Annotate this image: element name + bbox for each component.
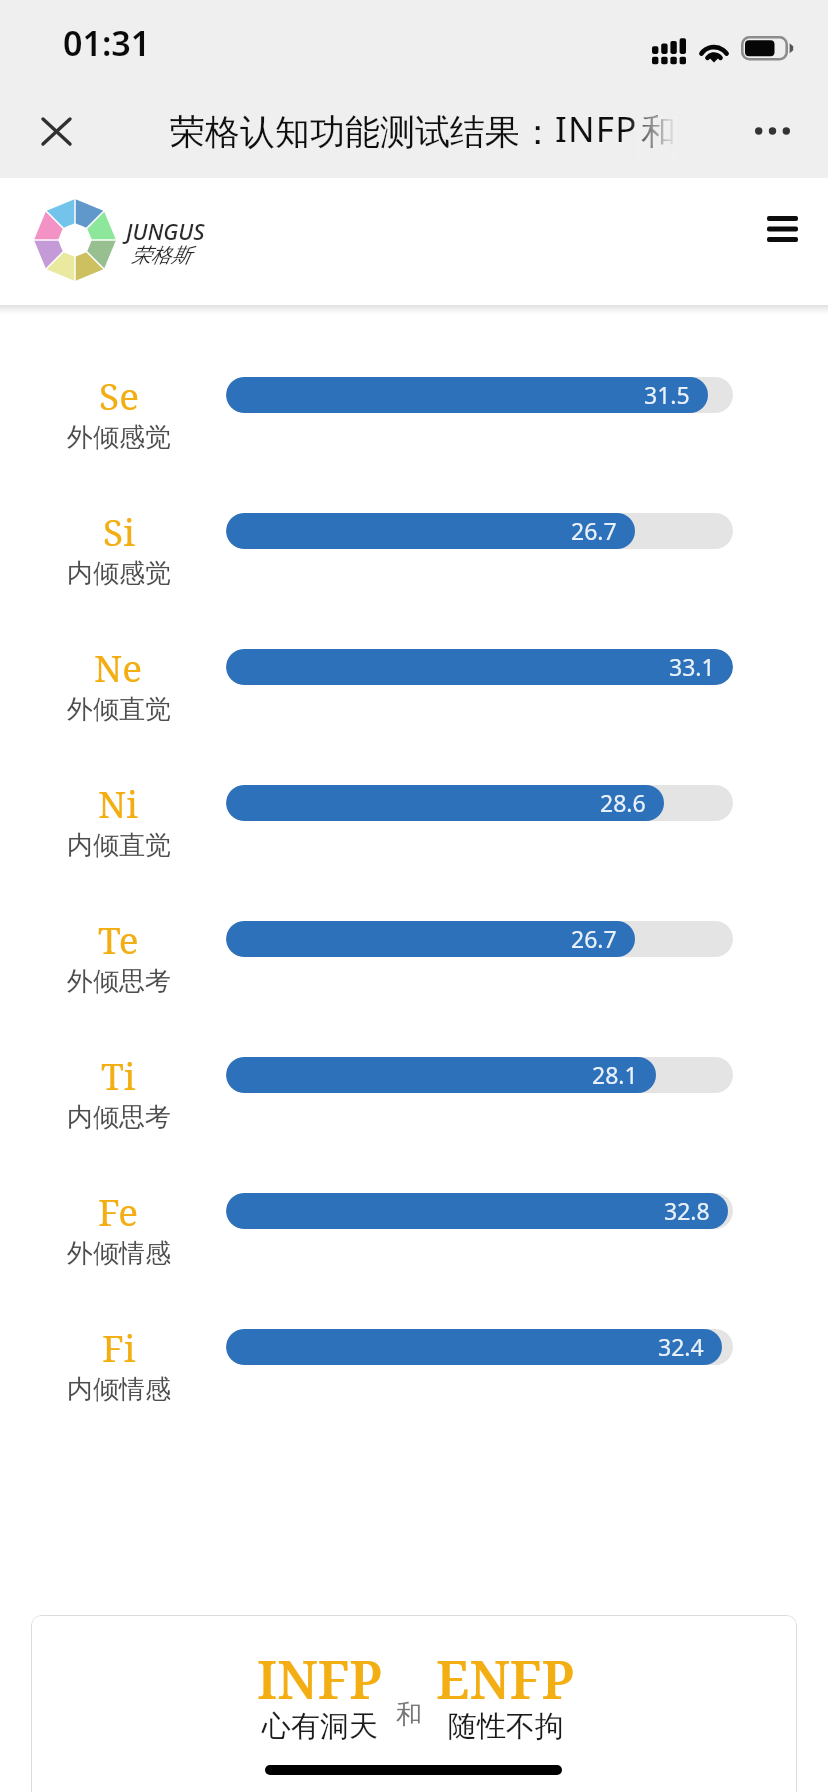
staticText: 荣格斯 [131,243,191,268]
staticText: 和 [641,110,676,154]
staticText: INFP [555,105,638,153]
staticText: 33.1 [669,651,715,682]
staticText: 01:31 [63,20,151,66]
staticText: 随性不拘 [448,1708,564,1745]
staticText: 内倾直觉 [67,829,171,862]
staticText: 26.7 [571,923,617,954]
staticText: 内倾情感 [67,1373,171,1406]
staticText: Te [98,914,139,964]
staticText: ENFP [436,1643,575,1714]
button[interactable]: Si [0,495,828,615]
staticText: Si [103,506,135,556]
button[interactable]: Ne [0,631,828,751]
button[interactable]: Close [24,99,88,163]
staticText: 外倾直觉 [67,693,171,726]
staticText: 心有洞天 [262,1708,378,1745]
staticText: 外倾思考 [67,965,171,998]
button[interactable]: Menu [751,198,813,260]
staticText: 31.5 [644,379,690,410]
staticText: 28.6 [600,787,646,818]
staticText: 内倾思考 [67,1101,171,1134]
button[interactable]: INFP [31,1615,797,1792]
staticText: 外倾感觉 [67,421,171,454]
staticText: 内倾感觉 [67,557,171,590]
button[interactable]: Ni [0,767,828,887]
button[interactable]: Te [0,903,828,1023]
staticText: 外倾情感 [67,1237,171,1270]
staticText: Ti [101,1050,136,1100]
staticText: 32.4 [658,1331,704,1362]
staticText: 28.1 [592,1059,638,1090]
staticText: Ni [98,778,139,828]
staticText: Ne [94,642,143,692]
staticText: 和 [396,1698,422,1731]
button[interactable]: Fe [0,1175,828,1295]
button[interactable]: Ti [0,1039,828,1159]
button[interactable]: Fi [0,1311,828,1431]
staticText: JUNGUS [126,216,205,246]
staticText: 26.7 [571,515,617,546]
staticText: 荣格认知功能测试结果： [170,110,555,154]
staticText: Fi [102,1322,136,1372]
button[interactable]: More options [740,99,804,163]
staticText: Fe [98,1186,139,1236]
button[interactable]: Se [0,359,828,479]
staticText: 32.8 [664,1195,710,1226]
staticText: INFP [257,1643,382,1714]
staticText: Se [99,370,139,420]
